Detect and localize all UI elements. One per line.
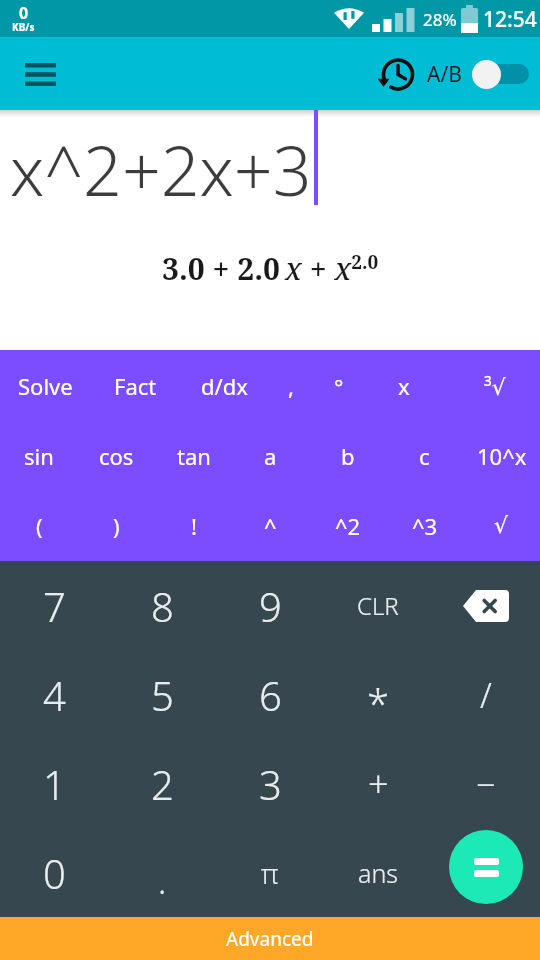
staticText: tan [177, 441, 211, 471]
staticText: 0 [43, 846, 66, 900]
staticText: 1 [43, 757, 66, 811]
button[interactable]: ( [0, 491, 78, 561]
button[interactable]: ³√ [473, 350, 517, 421]
button[interactable]: 10^x [463, 421, 540, 491]
staticText: 6 [259, 668, 282, 722]
button[interactable]: Advanced [0, 917, 540, 960]
button[interactable]: CLR [324, 561, 432, 650]
button[interactable]: 9 [216, 561, 324, 650]
button[interactable]: 2 [108, 739, 216, 828]
button[interactable]: ! [155, 491, 232, 561]
staticText: π [261, 854, 279, 892]
button[interactable]: ^3 [386, 491, 463, 561]
staticText: Advanced [226, 926, 314, 952]
button[interactable]: 0 [0, 828, 108, 917]
button[interactable]: 7 [0, 561, 108, 650]
staticText: / [480, 672, 492, 718]
button[interactable]: / [432, 650, 540, 739]
staticText: . [158, 858, 167, 904]
button[interactable]: tan [155, 421, 232, 491]
button[interactable]: a [232, 421, 309, 491]
button[interactable]: ^2 [309, 491, 386, 561]
staticText: * [367, 676, 390, 730]
staticText: ³√ [484, 371, 506, 401]
staticText: ^2 [335, 511, 361, 541]
button[interactable] [472, 59, 530, 89]
staticText: Fact [114, 371, 157, 401]
button[interactable]: − [432, 739, 540, 828]
staticText: x [398, 371, 410, 401]
staticText: ! [191, 511, 197, 541]
staticText: 28% [423, 8, 457, 31]
staticText: 9 [259, 579, 282, 633]
staticText: 7 [43, 579, 66, 633]
staticText: 3.0 + 2.0 x + x2.0 [162, 248, 379, 289]
staticText: + [368, 759, 389, 808]
button[interactable]: + [324, 739, 432, 828]
staticText: 5 [151, 668, 174, 722]
button[interactable]: , [274, 350, 308, 421]
staticText: 2 [151, 757, 174, 811]
button[interactable] [432, 561, 540, 650]
button[interactable]: Solve [10, 350, 80, 421]
button[interactable]: √ [463, 491, 540, 561]
button[interactable]: sin [0, 421, 78, 491]
button[interactable]: c [386, 421, 463, 491]
button[interactable]: π [216, 828, 324, 917]
staticText: Solve [18, 371, 73, 401]
button[interactable]: 5 [108, 650, 216, 739]
staticText: − [476, 761, 496, 807]
button[interactable]: 8 [108, 561, 216, 650]
button[interactable]: 6 [216, 650, 324, 739]
button[interactable]: ) [78, 491, 155, 561]
staticText: ^3 [412, 511, 438, 541]
staticText: cos [99, 441, 134, 471]
staticText: sin [24, 441, 54, 471]
staticText: 8 [151, 579, 174, 633]
staticText: a [264, 441, 277, 471]
button[interactable]: d/dx [192, 350, 256, 421]
staticText: 10^x [477, 441, 527, 471]
staticText: 0 [19, 2, 29, 24]
button[interactable]: x [387, 350, 421, 421]
staticText: ) [113, 511, 120, 541]
staticText: , [288, 371, 294, 401]
button[interactable]: * [324, 650, 432, 739]
button[interactable]: cos [78, 421, 155, 491]
staticText: A/B [427, 60, 462, 89]
staticText: d/dx [201, 371, 248, 401]
staticText: 3 [259, 757, 282, 811]
staticText: √ [494, 513, 509, 539]
staticText: ( [36, 511, 43, 541]
button[interactable]: b [309, 421, 386, 491]
staticText: b [341, 441, 355, 471]
staticText: ° [334, 371, 344, 401]
button[interactable]: 4 [0, 650, 108, 739]
button[interactable] [449, 830, 523, 904]
staticText: x^2+2x+3 [10, 123, 312, 216]
staticText: 12:54 [483, 5, 537, 34]
staticText: KB/s [12, 20, 35, 34]
staticText: ans [358, 856, 398, 890]
button[interactable] [16, 53, 64, 95]
staticText: 4 [43, 668, 66, 722]
staticText: c [419, 441, 430, 471]
button[interactable] [375, 53, 417, 95]
button[interactable]: 1 [0, 739, 108, 828]
staticText: CLR [357, 589, 399, 622]
button[interactable]: 3 [216, 739, 324, 828]
button[interactable]: Fact [105, 350, 165, 421]
button[interactable]: . [108, 828, 216, 917]
button[interactable]: ° [322, 350, 356, 421]
button[interactable]: ^ [232, 491, 309, 561]
staticText: ^ [264, 511, 277, 541]
button[interactable]: ans [324, 828, 432, 917]
